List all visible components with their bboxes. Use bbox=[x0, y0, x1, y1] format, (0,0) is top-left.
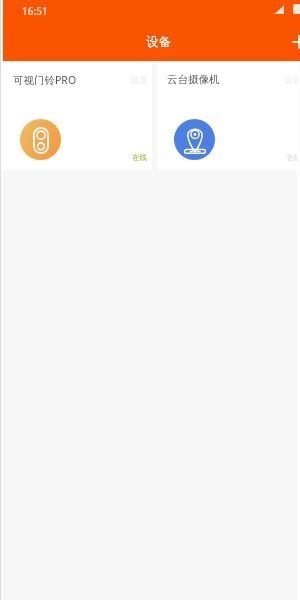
staticText: 16:51 bbox=[22, 4, 48, 18]
button[interactable]: 云台摄像机 bbox=[157, 62, 300, 170]
button[interactable]: Add device bbox=[285, 28, 300, 56]
staticText: 在线 bbox=[286, 153, 300, 162]
staticText: 设备 bbox=[146, 34, 171, 50]
staticText: 设置 bbox=[130, 74, 148, 85]
button[interactable]: 可视门铃PRO bbox=[3, 62, 152, 170]
staticText: 在线 bbox=[132, 153, 147, 162]
staticText: 云台摄像机 bbox=[167, 73, 220, 86]
staticText: 设置 bbox=[284, 74, 300, 85]
staticText: 可视门铃PRO bbox=[13, 73, 77, 87]
